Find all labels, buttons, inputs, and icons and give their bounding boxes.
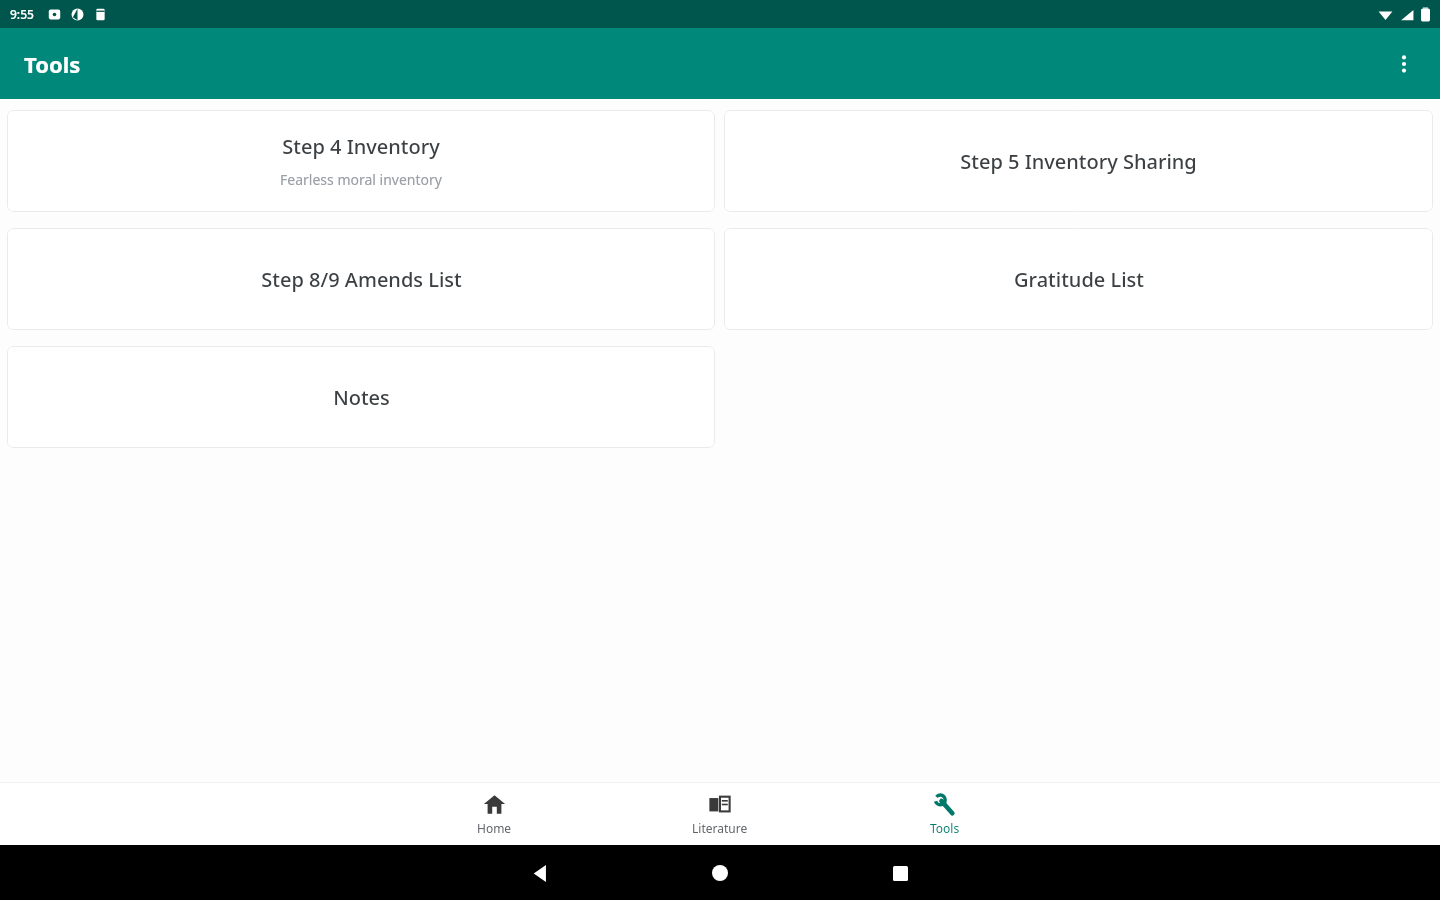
button[interactable]: Tools — [832, 787, 1057, 842]
button[interactable]: Literature — [607, 787, 832, 842]
button[interactable]: Back — [520, 853, 560, 893]
staticText: Step 4 Inventory — [282, 133, 440, 160]
staticText: Tools — [24, 49, 81, 79]
button[interactable]: Recents — [880, 853, 920, 893]
button[interactable]: More options — [1380, 40, 1428, 88]
staticText: Step 5 Inventory Sharing — [960, 148, 1197, 175]
button[interactable]: Home — [700, 853, 740, 893]
staticText: Notes — [333, 384, 390, 411]
button[interactable]: Step 5 Inventory Sharing — [724, 110, 1433, 212]
button[interactable]: Gratitude List — [724, 228, 1433, 330]
staticText: Tools — [930, 820, 960, 836]
staticText: Gratitude List — [1014, 266, 1144, 293]
button[interactable]: Step 8/9 Amends List — [7, 228, 715, 330]
button[interactable]: Home — [382, 787, 607, 842]
staticText: Home — [477, 820, 512, 836]
staticText: Literature — [692, 820, 748, 836]
staticText: 9:55 — [10, 6, 34, 22]
staticText: Fearless moral inventory — [280, 170, 442, 189]
button[interactable]: Notes — [7, 346, 715, 448]
button[interactable]: Step 4 Inventory — [7, 110, 715, 212]
staticText: Step 8/9 Amends List — [261, 266, 462, 293]
